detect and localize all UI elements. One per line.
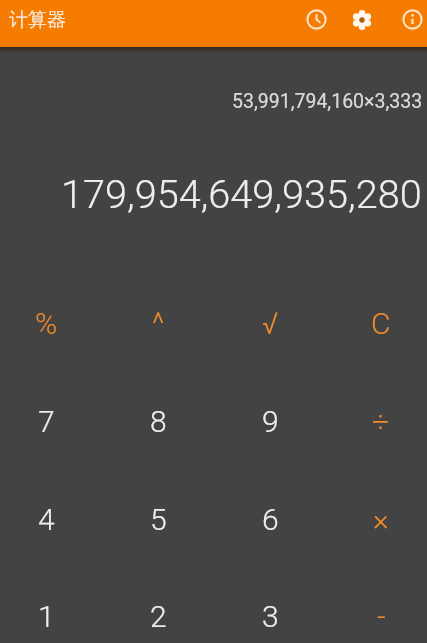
button[interactable]: × (326, 470, 427, 568)
staticText: - (377, 599, 386, 634)
staticText: 5 (150, 502, 167, 537)
staticText: 6 (262, 502, 279, 537)
button[interactable]: 6 (214, 470, 326, 568)
staticText: 53,991,794,160×3,333 (232, 90, 423, 113)
staticText: × (373, 502, 389, 537)
button[interactable]: 3 (214, 567, 326, 643)
button[interactable]: Settings (339, 0, 385, 43)
button[interactable]: About (389, 0, 427, 43)
button[interactable]: C (326, 274, 427, 372)
button[interactable]: 8 (103, 372, 214, 470)
button[interactable]: 7 (0, 372, 103, 470)
staticText: 1 (38, 599, 55, 634)
button[interactable]: 2 (103, 567, 214, 643)
staticText: C (371, 306, 391, 341)
staticText: 7 (38, 404, 55, 439)
staticText: 8 (150, 404, 167, 439)
button[interactable]: ^ (103, 274, 214, 372)
staticText: 2 (150, 599, 167, 634)
staticText: ÷ (372, 404, 390, 439)
staticText: 4 (38, 502, 55, 537)
button[interactable]: 9 (214, 372, 326, 470)
staticText: 179,954,649,935,280 (61, 171, 422, 218)
button[interactable]: 5 (103, 470, 214, 568)
button[interactable]: ÷ (326, 372, 427, 470)
staticText: 计算器 (9, 8, 66, 32)
button[interactable]: 4 (0, 470, 103, 568)
button[interactable]: √ (214, 274, 326, 372)
button[interactable]: % (0, 274, 103, 372)
staticText: % (35, 306, 58, 341)
staticText: ^ (152, 306, 165, 341)
staticText: 3 (262, 599, 279, 634)
button[interactable]: 1 (0, 567, 103, 643)
staticText: 9 (262, 404, 279, 439)
button[interactable]: - (326, 567, 427, 643)
staticText: √ (262, 306, 279, 341)
button[interactable]: History (293, 0, 339, 43)
